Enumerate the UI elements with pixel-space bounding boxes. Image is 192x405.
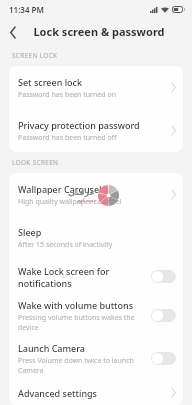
- staticText: عرفني: [68, 188, 96, 197]
- staticText: 11:34 PM: [9, 4, 44, 15]
- staticText: High quality wallpaper carousel: [18, 197, 122, 207]
- button[interactable]: Privacy protection password: [9, 109, 183, 152]
- button[interactable]: Back: [0, 19, 26, 45]
- staticText: Lock screen & password: [33, 24, 165, 39]
- staticText: Press Volume down twice to launch Camera: [18, 356, 151, 376]
- staticText: Wake Lock screen for notifications: [18, 265, 151, 289]
- button[interactable]: Advanced settings: [9, 380, 183, 405]
- staticText: Wallpaper Carousel: [18, 183, 102, 195]
- button[interactable]: Wake with volume buttons: [9, 294, 183, 337]
- staticText: Password has been turned on: [18, 90, 116, 100]
- staticText: Pressing volume buttons wakes the device: [18, 313, 151, 333]
- staticText: Launch Camera: [18, 342, 85, 354]
- button[interactable]: Toggle Wake Lock screen for notification…: [151, 270, 176, 283]
- staticText: Sleep: [18, 226, 42, 238]
- button[interactable]: Toggle Launch Camera: [151, 352, 176, 365]
- button[interactable]: Toggle Wake with volume buttons: [151, 309, 176, 322]
- staticText: Advanced settings: [18, 387, 97, 399]
- staticText: دوت كوم: [77, 197, 96, 204]
- staticText: Wake with volume buttons: [18, 299, 134, 311]
- button[interactable]: Set screen lock: [9, 66, 183, 109]
- staticText: Set screen lock: [18, 76, 83, 88]
- button[interactable]: Wake Lock screen for notifications: [9, 259, 183, 294]
- staticText: Privacy protection password: [18, 119, 140, 131]
- staticText: LOOK SCREEN: [12, 158, 59, 167]
- staticText: After 15 seconds of inactivity: [18, 240, 113, 250]
- button[interactable]: Sleep: [9, 216, 183, 259]
- staticText: SCREEN LOCK: [12, 51, 58, 60]
- button[interactable]: Wallpaper Carousel: [9, 173, 183, 216]
- button[interactable]: Launch Camera: [9, 337, 183, 380]
- staticText: Password has been turned off: [18, 133, 117, 143]
